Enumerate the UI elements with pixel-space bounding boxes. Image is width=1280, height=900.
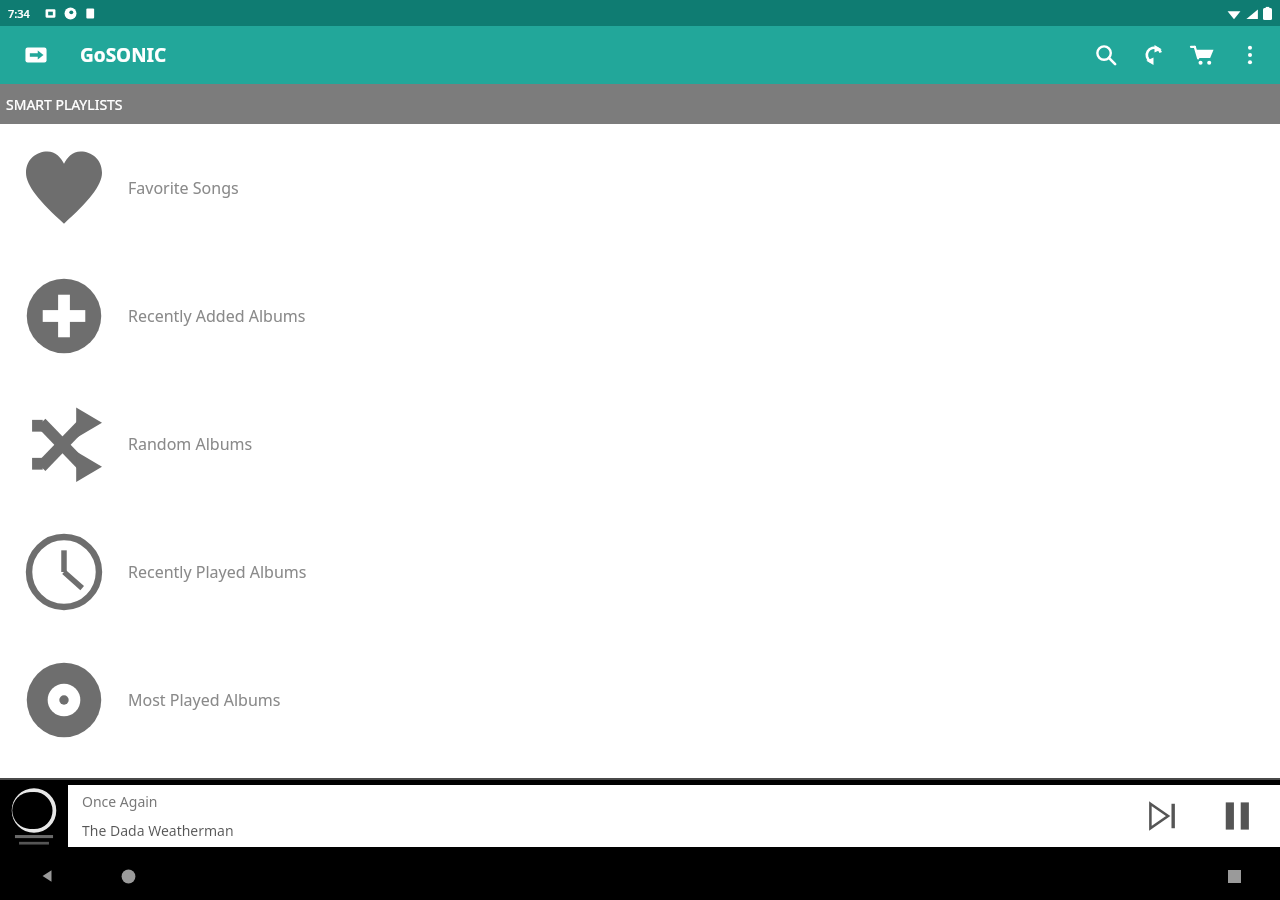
- button[interactable]: Recently Added Albums: [0, 252, 1280, 380]
- button[interactable]: Home: [106, 854, 150, 898]
- button[interactable]: Refresh: [1130, 31, 1178, 79]
- staticText: Most Played Albums: [128, 689, 281, 711]
- button[interactable]: Navigation menu: [12, 31, 60, 79]
- staticText: Once Again: [82, 792, 158, 811]
- staticText: 7:34: [8, 6, 30, 21]
- button[interactable]: Next track: [1136, 788, 1192, 844]
- button[interactable]: Random Albums: [0, 380, 1280, 508]
- staticText: The Dada Weatherman: [82, 821, 234, 840]
- button[interactable]: Shop: [1178, 31, 1226, 79]
- staticText: GoSONIC: [80, 42, 167, 68]
- staticText: Recently Played Albums: [128, 561, 307, 583]
- button[interactable]: Most Played Albums: [0, 636, 1280, 764]
- button[interactable]: Album art: [0, 782, 68, 850]
- button[interactable]: More options: [1226, 31, 1274, 79]
- button[interactable]: Search: [1082, 31, 1130, 79]
- button[interactable]: Back: [26, 854, 70, 898]
- staticText: Favorite Songs: [128, 177, 239, 199]
- staticText: Recently Added Albums: [128, 305, 306, 327]
- staticText: SMART PLAYLISTS: [6, 95, 123, 114]
- button[interactable]: Recent apps: [1212, 854, 1256, 898]
- staticText: Random Albums: [128, 433, 253, 455]
- button[interactable]: Favorite Songs: [0, 124, 1280, 252]
- button[interactable]: Recently Played Albums: [0, 508, 1280, 636]
- button[interactable]: Once Again: [68, 785, 1280, 847]
- button[interactable]: Pause: [1210, 788, 1266, 844]
